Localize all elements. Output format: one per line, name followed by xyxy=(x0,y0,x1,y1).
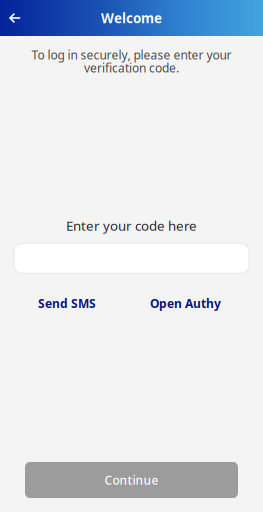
button[interactable]: Open Authy xyxy=(150,292,221,314)
button[interactable]: Continue xyxy=(25,462,238,498)
staticText: verification code. xyxy=(84,60,179,76)
staticText: Continue xyxy=(104,472,158,488)
staticText: To log in securely, please enter your xyxy=(31,47,231,63)
staticText: Open Authy xyxy=(150,295,221,311)
staticText: Welcome xyxy=(101,9,162,27)
button[interactable]: Send SMS xyxy=(38,292,96,314)
staticText: Enter your code here xyxy=(66,217,197,234)
button[interactable]: Verification code xyxy=(14,243,249,273)
staticText: Send SMS xyxy=(38,295,96,311)
button[interactable]: Back xyxy=(0,0,30,36)
